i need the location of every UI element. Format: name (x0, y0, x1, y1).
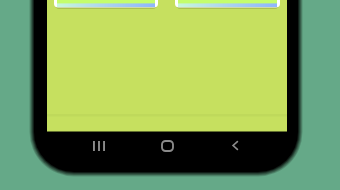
button[interactable]: Home (133, 132, 201, 159)
button[interactable]: Back (201, 132, 269, 159)
button[interactable]: Open item (54, 0, 158, 8)
button[interactable]: Recent apps (65, 132, 133, 159)
button[interactable]: Open item (175, 0, 280, 8)
